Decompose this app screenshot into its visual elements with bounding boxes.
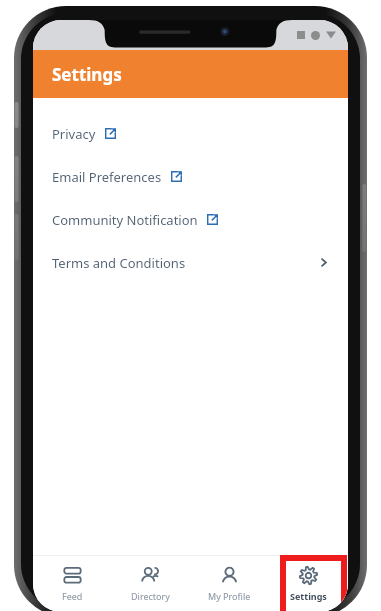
staticText: Privacy [52,125,96,143]
staticText: Settings [290,590,327,602]
button[interactable]: Privacy [33,112,348,155]
staticText: Settings [52,63,122,86]
button[interactable]: Community Notification [33,198,348,241]
button[interactable]: My Profile [190,556,269,611]
button[interactable]: Email Preferences [33,155,348,198]
button[interactable]: Feed [33,556,111,611]
staticText: Community Notification [52,211,198,229]
staticText: Feed [62,590,83,602]
staticText: My Profile [208,590,251,602]
staticText: Email Preferences [52,168,162,186]
staticText: Directory [131,590,170,602]
button[interactable]: Terms and Conditions [33,241,348,284]
staticText: Terms and Conditions [52,254,186,272]
button[interactable]: Settings [269,556,348,611]
button[interactable]: Directory [111,556,190,611]
